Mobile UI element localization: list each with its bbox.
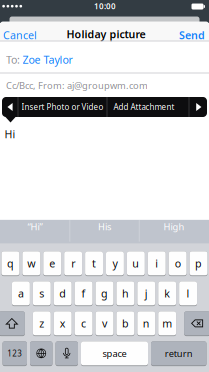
button[interactable]: His: [70, 220, 139, 233]
staticText: i: [155, 256, 158, 270]
button[interactable]: 123: [2, 341, 27, 366]
button[interactable]: l: [179, 281, 197, 306]
staticText: 123: [7, 348, 22, 359]
staticText: Holiday picture: [66, 27, 145, 41]
staticText: space: [102, 347, 126, 360]
button[interactable]: Send: [179, 28, 205, 42]
button[interactable]: g: [95, 281, 113, 306]
button[interactable]: Insert Photo or Video: [18, 97, 106, 117]
staticText: c: [81, 316, 86, 330]
staticText: u: [132, 256, 139, 270]
staticText: Zoe Taylor: [22, 52, 72, 67]
button[interactable]: q: [1, 251, 19, 276]
staticText: Insert Photo or Video: [21, 102, 103, 112]
button[interactable]: [0, 311, 25, 336]
button[interactable]: d: [54, 281, 72, 306]
staticText: t: [92, 256, 96, 270]
button[interactable]: [55, 341, 78, 366]
staticText: a: [18, 286, 24, 300]
button[interactable]: Cc/Bcc, From: aj@groupwm.com: [6, 74, 209, 96]
staticText: s: [39, 286, 44, 300]
staticText: v: [102, 316, 107, 330]
staticText: l: [187, 286, 190, 300]
button[interactable]: Cancel: [3, 28, 37, 42]
button[interactable]: e: [43, 251, 61, 276]
button[interactable]: [184, 311, 209, 336]
staticText: r: [71, 256, 75, 270]
button[interactable]: m: [158, 311, 176, 336]
staticText: g: [101, 286, 108, 300]
staticText: n: [143, 316, 150, 330]
staticText: Add Attachment: [113, 102, 174, 112]
button[interactable]: w: [22, 251, 40, 276]
staticText: o: [175, 256, 181, 270]
staticText: “Hi”: [27, 220, 42, 233]
button[interactable]: i: [148, 251, 166, 276]
button[interactable]: c: [75, 311, 92, 336]
button[interactable]: return: [151, 341, 206, 366]
staticText: 10:00: [94, 1, 116, 11]
staticText: y: [112, 256, 117, 270]
staticText: His: [98, 220, 111, 233]
staticText: e: [49, 256, 55, 270]
button[interactable]: n: [137, 311, 155, 336]
staticText: Cc/Bcc, From: aj@groupwm.com: [6, 79, 148, 92]
staticText: j: [145, 286, 148, 300]
staticText: q: [7, 256, 14, 270]
button[interactable]: z: [33, 311, 51, 336]
staticText: h: [122, 286, 129, 300]
button[interactable]: x: [54, 311, 72, 336]
staticText: return: [165, 347, 193, 360]
button[interactable]: [189, 97, 207, 117]
button[interactable]: space: [81, 341, 148, 366]
staticText: To:: [6, 52, 20, 67]
button[interactable]: a: [12, 281, 30, 306]
staticText: w: [27, 256, 35, 270]
button[interactable]: h: [116, 281, 134, 306]
staticText: m: [162, 316, 172, 330]
staticText: b: [122, 316, 129, 330]
button[interactable]: r: [64, 251, 82, 276]
button[interactable]: High: [139, 220, 208, 233]
button[interactable]: v: [95, 311, 113, 336]
button[interactable]: “Hi”: [0, 220, 69, 233]
button[interactable]: f: [75, 281, 92, 306]
button[interactable]: [30, 341, 52, 366]
button[interactable]: s: [33, 281, 51, 306]
button[interactable]: t: [85, 251, 103, 276]
staticText: Send: [179, 28, 205, 42]
staticText: Hi: [4, 127, 15, 141]
staticText: k: [164, 286, 170, 300]
staticText: Cancel: [3, 28, 37, 42]
button[interactable]: k: [158, 281, 176, 306]
button[interactable]: j: [137, 281, 155, 306]
button[interactable]: u: [127, 251, 145, 276]
staticText: p: [195, 256, 202, 270]
staticText: x: [60, 316, 66, 330]
button[interactable]: To:: [6, 44, 209, 74]
button[interactable]: [2, 97, 18, 117]
button[interactable]: o: [169, 251, 187, 276]
button[interactable]: Add Attachment: [104, 97, 184, 117]
button[interactable]: b: [116, 311, 134, 336]
staticText: d: [59, 286, 66, 300]
button[interactable]: p: [190, 251, 207, 276]
staticText: f: [82, 286, 86, 300]
staticText: z: [39, 316, 44, 330]
staticText: High: [163, 220, 184, 233]
button[interactable]: y: [106, 251, 124, 276]
